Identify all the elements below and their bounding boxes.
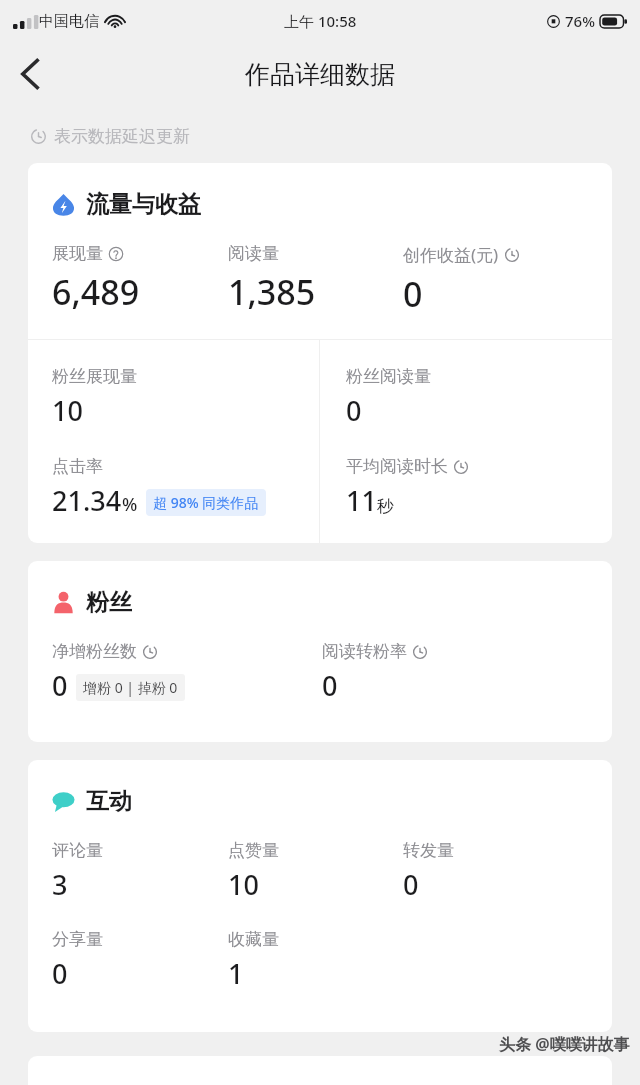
staticText: 阅读量 bbox=[228, 243, 279, 264]
button[interactable]: 创作收益(元) bbox=[403, 243, 592, 317]
button[interactable]: 互动 bbox=[52, 787, 132, 816]
button[interactable]: 流量与收益 bbox=[52, 190, 201, 219]
staticText: 0 bbox=[322, 667, 338, 704]
staticText: 表示数据延迟更新 bbox=[54, 126, 190, 147]
button[interactable]: 分享量 bbox=[52, 929, 228, 992]
staticText: 分享量 bbox=[52, 929, 103, 950]
staticText: 转发量 bbox=[403, 840, 454, 861]
staticText: 1 bbox=[228, 955, 244, 992]
staticText: 创作收益(元) bbox=[403, 243, 499, 266]
staticText: 1,385 bbox=[228, 269, 316, 315]
staticText: 评论量 bbox=[52, 840, 103, 861]
button[interactable]: 粉丝 bbox=[52, 588, 132, 617]
button[interactable]: Back bbox=[0, 44, 60, 104]
staticText: 粉丝展现量 bbox=[52, 366, 137, 387]
staticText: 平均阅读时长 bbox=[346, 456, 448, 477]
button[interactable]: 增粉 0 | 掉粉 0 bbox=[76, 674, 185, 701]
button[interactable]: 点赞量 bbox=[228, 840, 403, 903]
staticText: 10 bbox=[52, 392, 83, 429]
staticText: 粉丝阅读量 bbox=[346, 366, 431, 387]
staticText: 76% bbox=[565, 11, 595, 31]
button[interactable]: 超 98% 同类作品 bbox=[146, 489, 266, 516]
button[interactable]: 收藏量 bbox=[228, 929, 403, 992]
staticText: 0 bbox=[403, 271, 423, 317]
staticText: 阅读转粉率 bbox=[322, 641, 407, 662]
staticText: 中国电信 bbox=[39, 12, 99, 31]
button[interactable]: 转发量 bbox=[403, 840, 592, 903]
staticText: 收藏量 bbox=[228, 929, 279, 950]
staticText: 10 bbox=[228, 866, 259, 903]
staticText: 3 bbox=[52, 866, 68, 903]
staticText: 上午 10:58 bbox=[284, 11, 357, 31]
button[interactable]: 阅读量 bbox=[228, 243, 403, 315]
staticText: 展现量 bbox=[52, 243, 103, 264]
button[interactable]: 展现量 bbox=[52, 243, 228, 315]
staticText: 流量与收益 bbox=[86, 190, 201, 219]
button[interactable]: 评论量 bbox=[52, 840, 228, 903]
staticText: 21.34 bbox=[52, 482, 122, 519]
staticText: 秒 bbox=[377, 496, 394, 517]
staticText: 粉丝 bbox=[86, 588, 132, 617]
staticText: % bbox=[122, 492, 138, 517]
staticText: 互动 bbox=[86, 787, 132, 816]
staticText: 点击率 bbox=[52, 456, 103, 477]
staticText: 0 bbox=[403, 866, 419, 903]
button[interactable]: 阅读转粉率 bbox=[322, 641, 592, 704]
staticText: 净增粉丝数 bbox=[52, 641, 137, 662]
staticText: 增粉 0 | 掉粉 0 bbox=[83, 678, 178, 697]
staticText: 11 bbox=[346, 482, 377, 519]
staticText: 6,489 bbox=[52, 269, 140, 315]
staticText: 0 bbox=[52, 955, 68, 992]
staticText: 点赞量 bbox=[228, 840, 279, 861]
staticText: 超 98% 同类作品 bbox=[153, 493, 259, 512]
staticText: 0 bbox=[346, 392, 362, 429]
staticText: 头条 @噗噗讲故事 bbox=[499, 1033, 630, 1055]
staticText: 作品详细数据 bbox=[245, 59, 395, 90]
staticText: 0 bbox=[52, 667, 68, 704]
